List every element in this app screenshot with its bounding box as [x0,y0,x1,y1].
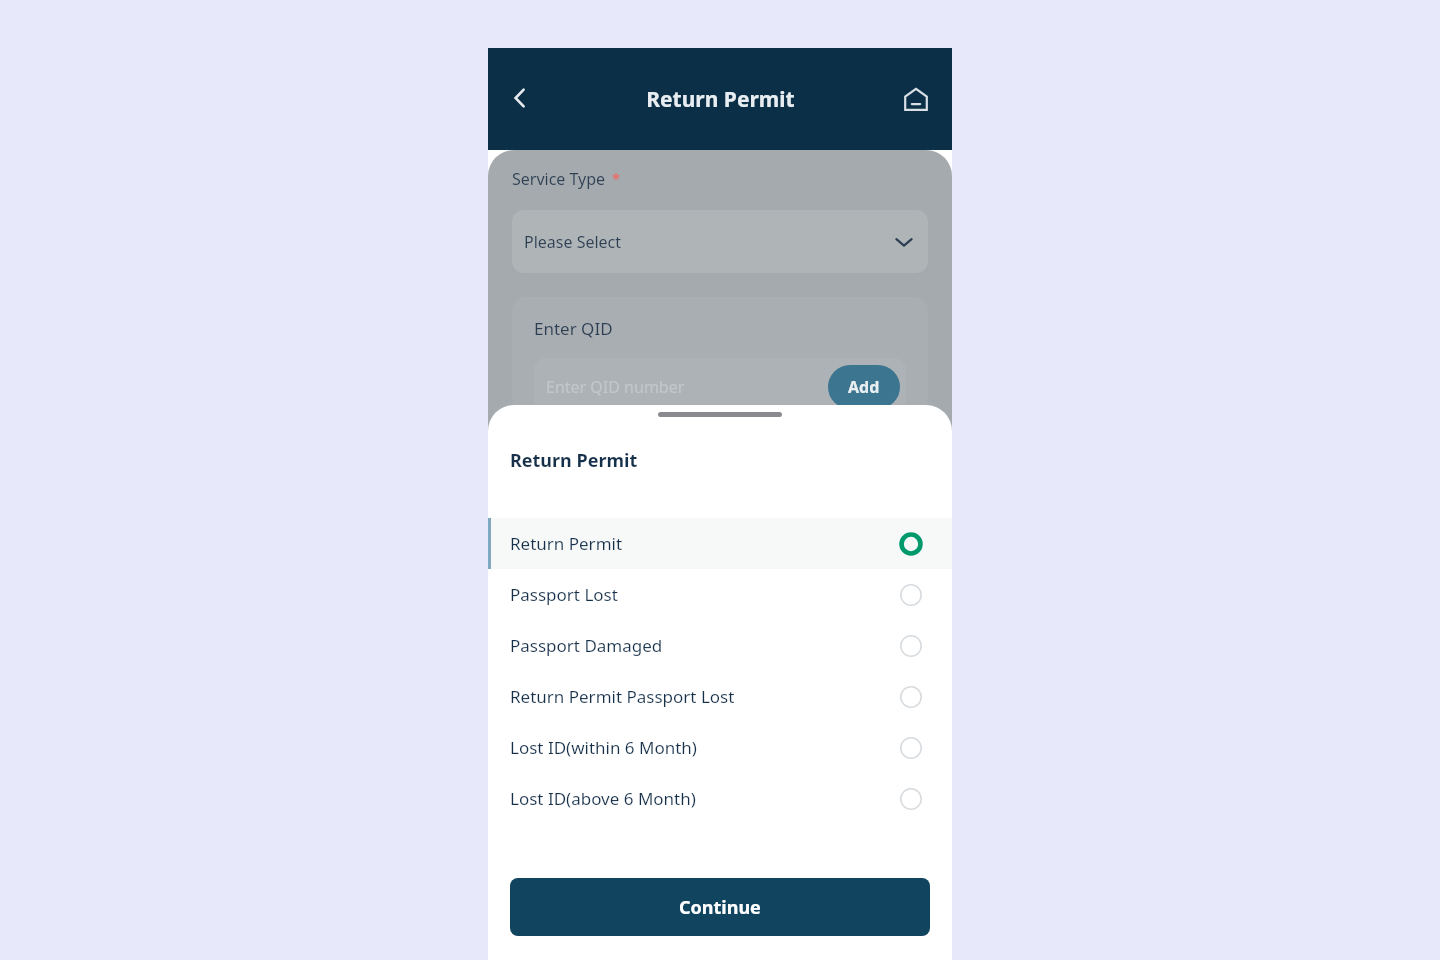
staticText: Continue [679,895,761,920]
staticText: Passport Lost [510,583,618,606]
staticText: Please Select [524,231,622,253]
button[interactable]: Please Select [512,210,928,273]
staticText: Enter QID [534,317,613,340]
button[interactable]: Lost ID(above 6 Month) [488,773,952,824]
button[interactable]: Back [496,74,544,122]
staticText: Return Permit [510,448,638,473]
staticText: * [612,168,621,188]
staticText: Lost ID(above 6 Month) [510,787,696,810]
staticText: Return Permit [510,532,623,555]
staticText: Return Permit [646,85,795,114]
staticText: Add [848,376,880,398]
staticText: Lost ID(within 6 Month) [510,736,697,759]
button[interactable]: Home [892,75,940,123]
staticText: Enter QID number [546,376,685,398]
button[interactable]: Add [828,365,900,409]
staticText: Return Permit Passport Lost [510,685,735,708]
button[interactable]: Passport Damaged [488,620,952,671]
staticText: Passport Damaged [510,634,663,657]
button[interactable]: Lost ID(within 6 Month) [488,722,952,773]
button[interactable]: Passport Lost [488,569,952,620]
button[interactable]: Continue [510,878,930,936]
button[interactable]: Return Permit Passport Lost [488,671,952,722]
button[interactable]: Return Permit [488,518,952,569]
staticText: Service Type [512,168,606,190]
